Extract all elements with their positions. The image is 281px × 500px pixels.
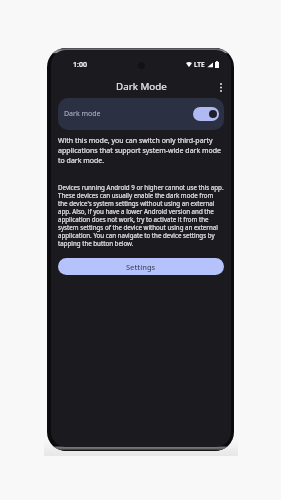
- button[interactable]: Dark mode: [58, 98, 224, 130]
- staticText: LTE: [194, 60, 205, 69]
- button[interactable]: More options: [211, 77, 231, 97]
- staticText: Settings: [126, 262, 156, 272]
- staticText: Dark mode: [64, 109, 193, 119]
- staticText: Dark Mode: [116, 80, 167, 93]
- staticText: 1:00: [73, 60, 87, 70]
- button[interactable]: Settings: [58, 258, 224, 275]
- staticText: With this mode, you can switch only thir…: [58, 136, 224, 166]
- staticText: Devices running Android 9 or higher cann…: [58, 183, 224, 247]
